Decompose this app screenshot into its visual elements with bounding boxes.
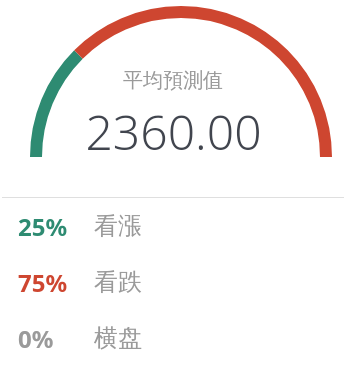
staticText: 75% [18,266,68,299]
button[interactable]: 25% [0,209,346,243]
staticText: 0% [18,322,54,355]
button[interactable]: 0% [0,321,346,355]
staticText: 横盘 [94,323,142,353]
staticText: 2360.00 [85,99,262,164]
staticText: 看跌 [94,267,142,297]
staticText: 25% [18,210,68,243]
button[interactable]: 平均預測值 [0,0,346,198]
staticText: 平均預測值 [123,68,223,93]
staticText: 看漲 [94,211,142,241]
button[interactable]: 75% [0,265,346,299]
